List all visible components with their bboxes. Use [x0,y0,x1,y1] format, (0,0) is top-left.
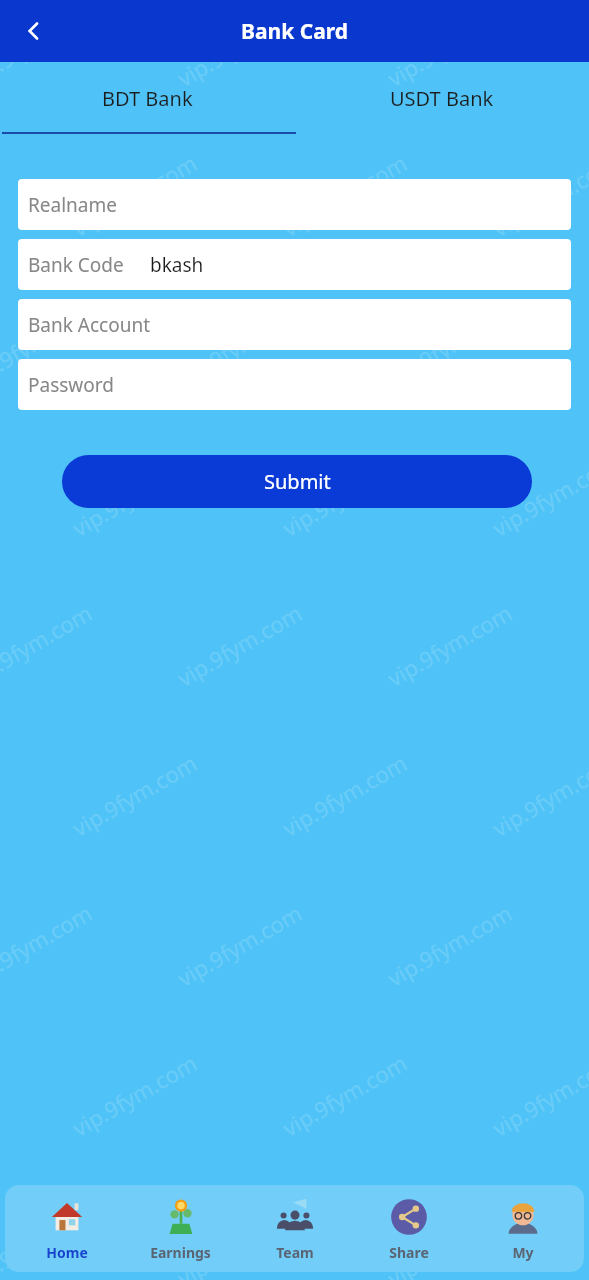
staticText: vip.9fym.com [277,747,412,843]
staticText: BDT Bank [102,85,193,112]
staticText: Password [28,372,114,398]
staticText: vip.9fym.com [487,747,589,843]
staticText: vip.9fym.com [382,297,517,393]
staticText: Bank Card [241,17,348,46]
staticText: vip.9fym.com [0,0,97,93]
staticText: vip.9fym.com [382,597,517,693]
staticText: vip.9fym.com [487,447,589,543]
button[interactable]: Realname [18,179,571,230]
staticText: bkash [150,252,204,278]
staticText: vip.9fym.com [172,0,307,93]
staticText: My [512,1243,534,1262]
staticText: vip.9fym.com [172,597,307,693]
staticText: vip.9fym.com [382,0,517,93]
button[interactable]: USDT Bank [294,62,589,134]
staticText: vip.9fym.com [0,1197,97,1280]
button[interactable]: My [470,1185,575,1272]
staticText: vip.9fym.com [277,147,412,243]
button[interactable]: Bank Account [18,299,571,350]
staticText: vip.9fym.com [67,1047,202,1143]
button[interactable]: Password [18,359,571,410]
staticText: Bank Code [28,252,124,278]
staticText: vip.9fym.com [0,597,97,693]
button[interactable]: Submit [62,455,532,508]
button[interactable]: Home [14,1185,119,1272]
button[interactable]: Team [242,1185,347,1272]
staticText: vip.9fym.com [382,897,517,993]
staticText: vip.9fym.com [487,147,589,243]
staticText: vip.9fym.com [0,897,97,993]
staticText: vip.9fym.com [172,897,307,993]
staticText: vip.9fym.com [67,747,202,843]
staticText: vip.9fym.com [67,147,202,243]
staticText: Bank Account [28,312,151,338]
button[interactable]: BDT Bank [0,62,294,134]
staticText: vip.9fym.com [0,297,97,393]
staticText: vip.9fym.com [172,297,307,393]
staticText: Submit [264,468,331,495]
staticText: vip.9fym.com [67,447,202,543]
staticText: vip.9fym.com [172,1197,307,1280]
staticText: Earnings [150,1243,211,1262]
staticText: vip.9fym.com [382,1197,517,1280]
staticText: Realname [28,192,117,218]
staticText: USDT Bank [390,85,494,112]
staticText: vip.9fym.com [487,1047,589,1143]
button[interactable]: Earnings [128,1185,233,1272]
staticText: Home [46,1243,88,1262]
staticText: vip.9fym.com [277,1047,412,1143]
staticText: Share [389,1243,429,1262]
staticText: vip.9fym.com [277,447,412,543]
staticText: Team [276,1243,314,1262]
button[interactable]: Bank Code [18,239,571,290]
button[interactable]: Share [356,1185,461,1272]
button[interactable]: Back [12,9,56,53]
